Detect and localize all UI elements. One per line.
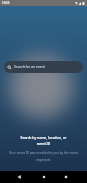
staticText: 10:25 [2,1,10,5]
staticText: Search for an event [14,64,45,69]
button[interactable]: Search for an event [4,61,83,73]
button[interactable]: Recent apps [60,171,72,183]
button[interactable]: Back [13,171,25,183]
staticText: Search by name, location, or event ID [20,135,67,146]
button[interactable]: Home [38,171,50,183]
staticText: Your event ID was emailed to you by the … [8,151,79,162]
